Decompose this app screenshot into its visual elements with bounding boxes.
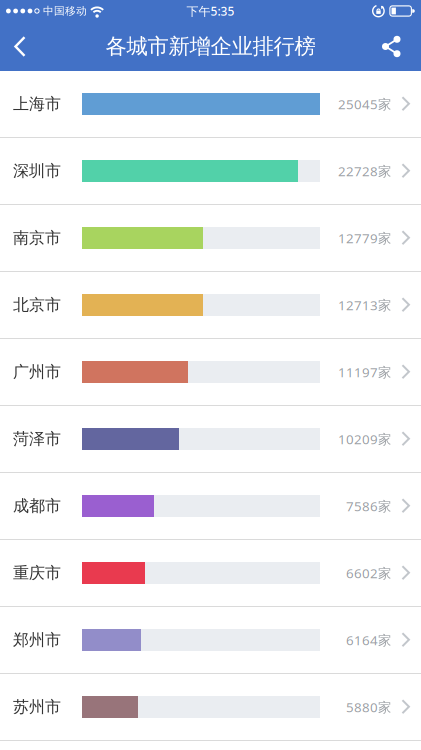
staticText: 广州市 (13, 362, 61, 382)
button[interactable]: 北京市 (0, 272, 421, 339)
staticText: 25045家 (338, 95, 391, 113)
staticText: 5880家 (346, 698, 391, 716)
staticText: 12779家 (338, 229, 391, 247)
staticText: 菏泽市 (13, 429, 61, 449)
staticText: 6164家 (346, 631, 391, 649)
button[interactable]: 重庆市 (0, 540, 421, 607)
staticText: 12713家 (338, 296, 391, 314)
button[interactable]: 苏州市 (0, 674, 421, 741)
button[interactable]: 南京市 (0, 205, 421, 272)
staticText: 成都市 (13, 496, 61, 516)
staticText: 各城市新增企业排行榜 (105, 33, 315, 60)
staticText: 下午5:35 (186, 3, 234, 19)
staticText: 北京市 (13, 295, 61, 315)
staticText: 上海市 (13, 94, 61, 114)
staticText: 郑州市 (13, 630, 61, 650)
staticText: 22728家 (338, 162, 391, 180)
staticText: 7586家 (346, 497, 391, 515)
staticText: 重庆市 (13, 563, 61, 583)
button[interactable]: Share (371, 22, 421, 71)
button[interactable]: 成都市 (0, 473, 421, 540)
staticText: 深圳市 (13, 161, 61, 181)
staticText: 6602家 (346, 564, 391, 582)
button[interactable]: 上海市 (0, 71, 421, 138)
button[interactable]: 郑州市 (0, 607, 421, 674)
button[interactable]: 菏泽市 (0, 406, 421, 473)
button[interactable]: 广州市 (0, 339, 421, 406)
staticText: 苏州市 (13, 697, 61, 717)
staticText: 南京市 (13, 228, 61, 248)
button[interactable]: Back (0, 22, 36, 71)
staticText: 11197家 (338, 363, 391, 381)
button[interactable]: 深圳市 (0, 138, 421, 205)
staticText: 10209家 (338, 430, 391, 448)
staticText: 中国移动 (43, 4, 87, 17)
